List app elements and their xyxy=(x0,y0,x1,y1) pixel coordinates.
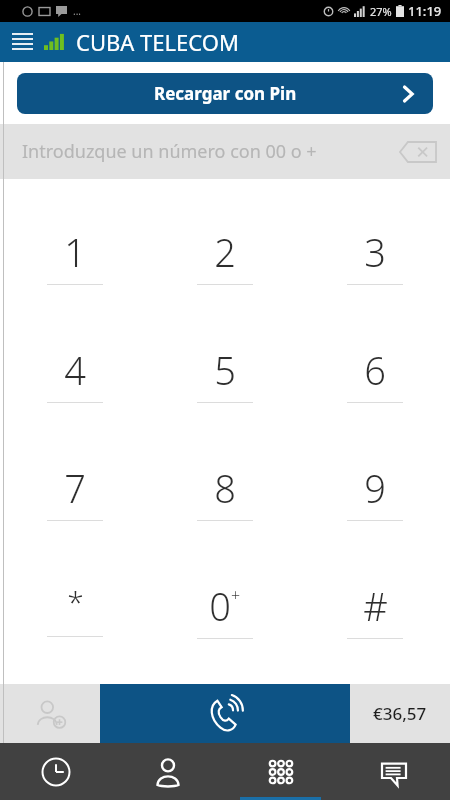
staticText: 27% xyxy=(370,4,392,19)
staticText: * xyxy=(67,581,84,622)
button[interactable]: 4 xyxy=(0,314,150,432)
button[interactable]: 3 xyxy=(300,197,450,314)
button[interactable]: Call xyxy=(100,684,350,743)
button[interactable]: Menu xyxy=(0,22,44,62)
staticText: + xyxy=(231,584,241,606)
staticText: 0 xyxy=(209,580,231,632)
button[interactable]: Dialpad xyxy=(224,743,337,800)
staticText: Recargar con Pin xyxy=(154,82,297,105)
staticText: 5 xyxy=(214,344,236,396)
staticText: 9 xyxy=(364,462,386,514)
button[interactable]: Recent calls xyxy=(0,743,112,800)
staticText: 6 xyxy=(364,344,386,396)
button[interactable]: Messages xyxy=(337,743,450,800)
button[interactable]: Add contact xyxy=(0,684,100,743)
button[interactable]: Introduzque un número con 00 o + xyxy=(0,124,450,179)
button[interactable]: Recargar con Pin xyxy=(17,73,433,114)
staticText: ... xyxy=(73,4,82,18)
staticText: 8 xyxy=(214,462,236,514)
button[interactable]: Contacts xyxy=(112,743,224,800)
button[interactable]: * xyxy=(0,550,150,668)
staticText: 2 xyxy=(214,226,236,278)
button[interactable]: 6 xyxy=(300,314,450,432)
button[interactable]: 8 xyxy=(150,432,300,550)
button[interactable]: 9 xyxy=(300,432,450,550)
button[interactable]: # xyxy=(300,550,450,668)
button[interactable]: 1 xyxy=(0,197,150,314)
staticText: 4 xyxy=(64,344,86,396)
staticText: €36,57 xyxy=(373,702,427,725)
button[interactable]: €36,57 xyxy=(350,684,450,743)
staticText: CUBA TELECOM xyxy=(76,27,239,57)
staticText: 1 xyxy=(64,226,86,278)
staticText: 7 xyxy=(64,462,86,514)
staticText: Introduzque un número con 00 o + xyxy=(22,139,317,164)
button[interactable]: 2 xyxy=(150,197,300,314)
staticText: 11:19 xyxy=(408,2,442,20)
button[interactable]: Backspace xyxy=(396,135,440,169)
button[interactable]: 5 xyxy=(150,314,300,432)
staticText: # xyxy=(363,580,388,632)
button[interactable]: 0 xyxy=(150,550,300,668)
staticText: 3 xyxy=(364,226,386,278)
button[interactable]: 7 xyxy=(0,432,150,550)
